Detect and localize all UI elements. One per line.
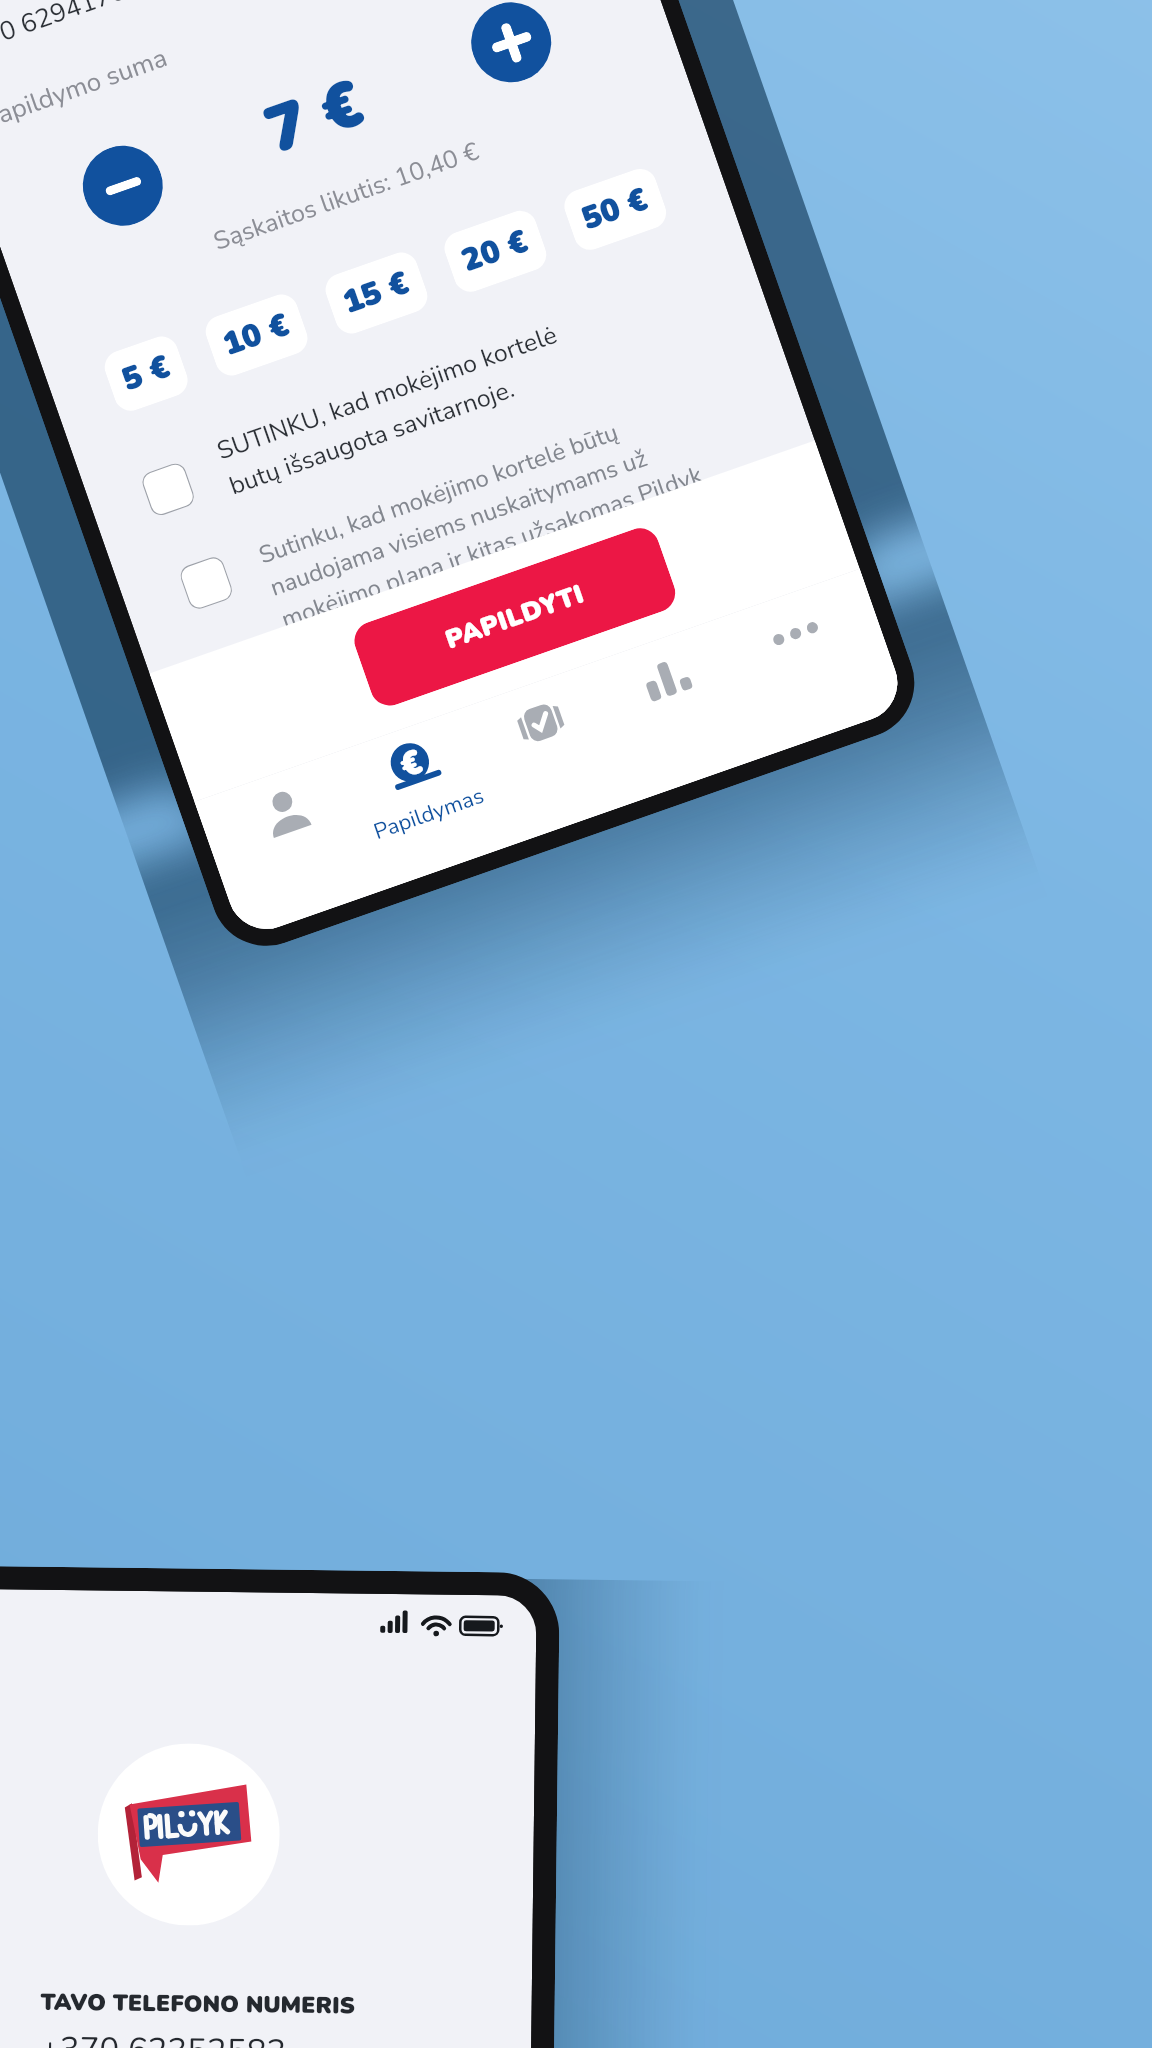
staticText: 5 € xyxy=(116,345,176,402)
button[interactable]: Profilis xyxy=(208,752,384,935)
staticText: Sąskaitos likutis: 10,40 € xyxy=(209,134,484,259)
staticText: 10 € xyxy=(217,303,296,367)
button[interactable]: 15 € xyxy=(321,248,432,338)
staticText: 7 € xyxy=(254,59,376,175)
staticText: PAPILDYTI xyxy=(441,576,589,657)
staticText: +370 62352583 xyxy=(40,2027,287,2048)
button[interactable]: Naudojimas xyxy=(591,618,766,801)
button[interactable]: 5 € xyxy=(100,332,192,415)
staticText: Papildymas xyxy=(370,781,488,847)
button[interactable]: Sutikimo žymimasis langelis 1 xyxy=(139,461,197,518)
button[interactable]: Daugiau xyxy=(718,574,894,756)
button[interactable]: Papildymas xyxy=(336,708,512,890)
button[interactable]: Planai xyxy=(463,663,639,845)
staticText: € xyxy=(394,739,429,789)
button[interactable]: Sutikimo žymimasis langelis 2 xyxy=(178,554,235,612)
staticText: Sutinku, kad mokėjimo kortelė būtų naudo… xyxy=(255,394,718,669)
button[interactable]: Sumažinti sumą xyxy=(72,135,174,237)
button[interactable]: Padidinti sumą xyxy=(460,0,562,93)
button[interactable]: 10 € xyxy=(201,290,312,380)
staticText: 15 € xyxy=(337,261,416,325)
staticText: SUTINKU, kad mokėjimo kortelė butų išsau… xyxy=(213,318,574,503)
staticText: Papildymo suma xyxy=(0,40,172,137)
button[interactable]: PAPILDYTI xyxy=(349,523,681,711)
staticText: 20 € xyxy=(456,219,535,283)
staticText: 0 62941700 xyxy=(0,0,146,50)
button[interactable]: 50 € xyxy=(560,164,671,254)
button[interactable]: 20 € xyxy=(440,206,551,296)
staticText: 50 € xyxy=(576,177,655,241)
staticText: TAVO TELEFONO NUMERIS xyxy=(40,1987,356,2021)
